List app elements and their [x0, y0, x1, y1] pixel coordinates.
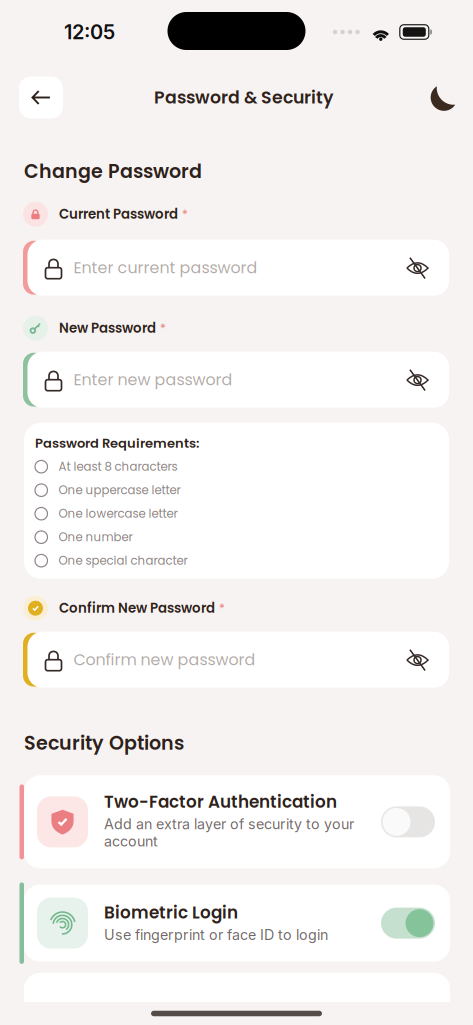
staticText: One lowercase letter	[58, 505, 177, 522]
staticText: 12:05	[64, 20, 115, 44]
staticText: Current Password	[59, 205, 178, 224]
staticText: *	[160, 320, 166, 337]
staticText: Enter current password	[73, 257, 257, 279]
staticText: Add an extra layer of security to your a…	[104, 815, 354, 850]
staticText: One special character	[58, 552, 187, 569]
staticText: Change Password	[24, 158, 202, 185]
staticText: Confirm New Password	[59, 599, 215, 618]
staticText: One number	[58, 529, 132, 545]
staticText: Security Options	[24, 730, 184, 756]
button[interactable]: Enter new password	[23, 352, 449, 408]
staticText: Confirm new password	[73, 649, 255, 671]
staticText: Two-Factor Authentication	[104, 790, 337, 814]
button[interactable]: Two-Factor Authentication	[19, 775, 450, 868]
button[interactable]: Confirm new password	[23, 632, 449, 688]
staticText: One uppercase letter	[58, 482, 180, 498]
staticText: Password Requirements:	[35, 434, 199, 452]
staticText: *	[219, 600, 225, 617]
staticText: Enter new password	[73, 369, 232, 391]
staticText: *	[182, 206, 188, 223]
staticText: Password & Security	[154, 85, 333, 110]
button[interactable]: Enter current password	[23, 240, 449, 296]
button[interactable]: Toggle dark mode	[424, 76, 464, 118]
staticText: Use fingerprint or face ID to login	[104, 926, 328, 943]
staticText: Biometric Login	[104, 901, 238, 924]
staticText: At least 8 characters	[58, 458, 177, 475]
button[interactable]: Biometric Login	[19, 873, 450, 973]
staticText: New Password	[59, 319, 156, 338]
button[interactable]: Back	[19, 76, 63, 118]
